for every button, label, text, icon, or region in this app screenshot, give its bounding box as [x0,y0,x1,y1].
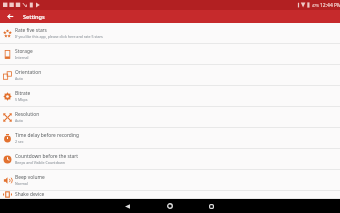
button[interactable]: Storage [0,44,340,65]
button[interactable]: Home [159,199,180,213]
button[interactable]: Back [0,10,20,23]
staticText: Orientation [15,69,42,76]
button[interactable]: Orientation [0,65,340,86]
staticText: Beeps and Visible Countdown [15,160,66,165]
staticText: 12:44 PM [320,2,340,9]
button[interactable]: Beep volume [0,170,340,191]
staticText: Internal [15,55,29,60]
staticText: Time delay before recording [15,132,80,139]
button[interactable]: Shake device [0,191,340,199]
staticText: 2 sec [15,139,24,144]
staticText: Auto [15,76,23,81]
button[interactable]: Countdown before the start [0,149,340,170]
staticText: If you like this app, please click here … [15,34,103,39]
button[interactable]: Resolution [0,107,340,128]
button[interactable]: Bitrate [0,86,340,107]
staticText: 47% [312,3,320,8]
staticText: Resolution [15,111,40,118]
staticText: Countdown before the start [15,153,79,160]
staticText: 5 Mbps [15,97,28,102]
staticText: Settings [23,13,45,21]
staticText: Normal [15,181,28,186]
staticText: Shake device [15,191,45,198]
button[interactable]: Rate five stars [0,23,340,44]
button[interactable]: Back [117,199,138,213]
staticText: Storage [15,48,33,55]
staticText: Auto [15,118,23,123]
staticText: Beep volume [15,174,45,181]
staticText: Rate five stars [15,27,47,34]
staticText: Bitrate [15,90,31,97]
button[interactable]: Time delay before recording [0,128,340,149]
button[interactable]: Recent apps [201,199,222,213]
